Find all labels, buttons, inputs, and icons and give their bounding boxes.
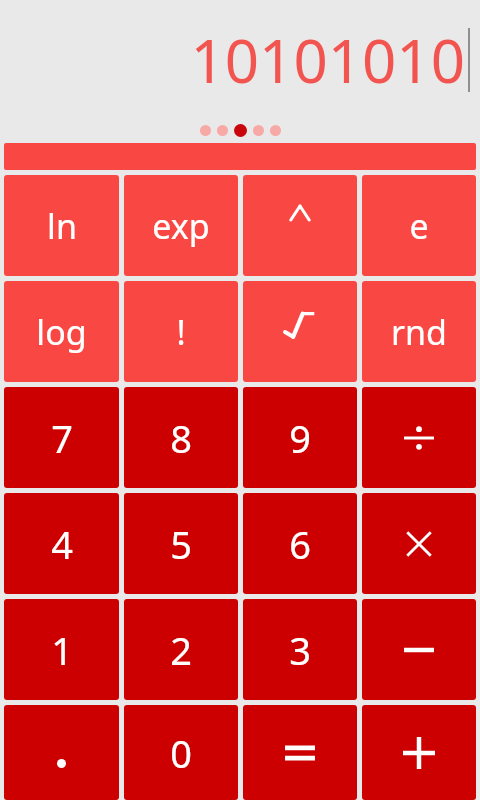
staticText: 10101010 (190, 19, 465, 101)
button[interactable]: 1 (4, 599, 119, 700)
staticText: rnd (391, 309, 447, 355)
staticText: exp (152, 203, 210, 249)
button[interactable]: 0 (124, 705, 238, 800)
button[interactable]: e (362, 175, 476, 276)
staticText: 6 (289, 518, 311, 570)
staticText: ! (176, 309, 186, 355)
button[interactable]: 9 (243, 387, 357, 488)
button[interactable]: 7 (4, 387, 119, 488)
staticText: 5 (170, 518, 192, 570)
button[interactable]: exp (124, 175, 238, 276)
button[interactable]: 5 (124, 493, 238, 594)
staticText: 9 (289, 412, 311, 464)
button[interactable]: Decimal point (4, 705, 119, 800)
staticText: 8 (170, 412, 192, 464)
button[interactable]: Plus (362, 705, 476, 800)
button[interactable]: 4 (4, 493, 119, 594)
button[interactable]: Square root (243, 281, 357, 382)
button[interactable]: Minus (362, 599, 476, 700)
button[interactable]: log (4, 281, 119, 382)
staticText: e (409, 203, 429, 249)
staticText: log (36, 309, 87, 355)
button[interactable]: Multiply (362, 493, 476, 594)
staticText: 4 (51, 518, 73, 570)
staticText: 2 (170, 624, 192, 676)
button[interactable]: 6 (243, 493, 357, 594)
staticText: 7 (51, 412, 73, 464)
button[interactable]: 2 (124, 599, 238, 700)
button[interactable]: 3 (243, 599, 357, 700)
button[interactable]: ! (124, 281, 238, 382)
button[interactable]: ln (4, 175, 119, 276)
staticText: 3 (289, 624, 311, 676)
button[interactable]: Power (243, 175, 357, 276)
staticText: 0 (170, 727, 192, 779)
button[interactable]: 8 (124, 387, 238, 488)
button[interactable]: Divide (362, 387, 476, 488)
button[interactable]: rnd (362, 281, 476, 382)
staticText: 1 (51, 624, 73, 676)
button[interactable]: Equals (243, 705, 357, 800)
staticText: ln (47, 203, 77, 249)
